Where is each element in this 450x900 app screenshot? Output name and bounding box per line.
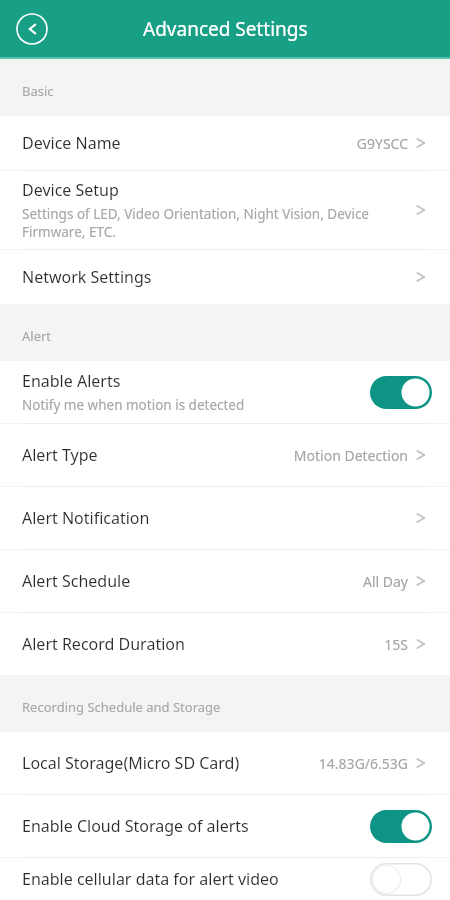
staticText: G9YSCC bbox=[356, 134, 408, 153]
staticText: Alert Schedule bbox=[22, 570, 131, 592]
staticText: Network Settings bbox=[22, 266, 152, 288]
staticText: Enable Alerts bbox=[22, 370, 121, 392]
staticText: All Day bbox=[362, 572, 408, 591]
staticText: Alert Notification bbox=[22, 507, 150, 529]
button[interactable]: Alert Schedule bbox=[0, 550, 450, 612]
button[interactable]: On bbox=[370, 810, 432, 843]
button[interactable]: On bbox=[370, 376, 432, 409]
button[interactable]: Back bbox=[8, 5, 56, 53]
button[interactable]: Network Settings bbox=[0, 250, 450, 304]
button[interactable]: Alert Notification bbox=[0, 487, 450, 549]
button[interactable]: Local Storage(Micro SD Card) bbox=[0, 732, 450, 794]
staticText: Settings of LED, Video Orientation, Nigh… bbox=[22, 205, 402, 241]
staticText: Motion Detection bbox=[293, 446, 408, 465]
staticText: 15S bbox=[384, 635, 408, 654]
staticText: Advanced Settings bbox=[143, 16, 308, 42]
button[interactable]: Enable cellular data for alert video bbox=[0, 858, 450, 900]
button[interactable]: Alert Type bbox=[0, 424, 450, 486]
button[interactable]: Off bbox=[370, 863, 432, 896]
staticText: Local Storage(Micro SD Card) bbox=[22, 752, 240, 774]
staticText: 14.83G/6.53G bbox=[318, 754, 408, 773]
staticText: Basic bbox=[22, 82, 54, 100]
staticText: Enable cellular data for alert video bbox=[22, 868, 279, 890]
button[interactable]: Device Name bbox=[0, 116, 450, 170]
button[interactable]: Enable Cloud Storage of alerts bbox=[0, 795, 450, 857]
staticText: Device Name bbox=[22, 132, 121, 154]
staticText: Alert Record Duration bbox=[22, 633, 185, 655]
staticText: Alert bbox=[22, 327, 52, 345]
staticText: Notify me when motion is detected bbox=[22, 396, 245, 414]
staticText: Alert Type bbox=[22, 444, 98, 466]
staticText: Device Setup bbox=[22, 179, 119, 201]
staticText: Recording Schedule and Storage bbox=[22, 698, 221, 716]
button[interactable]: Enable Alerts bbox=[0, 361, 450, 423]
button[interactable]: Device Setup bbox=[0, 171, 450, 249]
button[interactable]: Alert Record Duration bbox=[0, 613, 450, 675]
staticText: Enable Cloud Storage of alerts bbox=[22, 815, 249, 837]
